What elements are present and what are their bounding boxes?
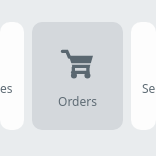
staticText: es xyxy=(0,80,13,96)
staticText: Orders xyxy=(58,93,97,109)
staticText: Se xyxy=(142,80,156,96)
button[interactable]: Orders xyxy=(32,22,123,130)
button[interactable]: es xyxy=(0,22,24,130)
other: Orders xyxy=(60,45,96,81)
button[interactable]: Se xyxy=(131,22,156,130)
